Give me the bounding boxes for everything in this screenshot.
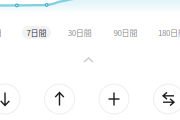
button[interactable]: 30日間 bbox=[58, 26, 102, 39]
button[interactable]: Send bbox=[44, 84, 74, 114]
button[interactable]: Swap bbox=[153, 84, 180, 114]
button[interactable]: 90日間 bbox=[103, 26, 147, 39]
button[interactable]: 180日間 bbox=[150, 26, 180, 39]
button[interactable]: 1日 bbox=[0, 26, 18, 39]
button[interactable]: Buy bbox=[99, 84, 129, 114]
staticText: 90日間 bbox=[113, 27, 137, 38]
staticText: 30日間 bbox=[68, 27, 92, 38]
staticText: 180日間 bbox=[158, 27, 180, 38]
button[interactable]: Receive bbox=[0, 84, 20, 114]
staticText: 1日 bbox=[0, 27, 2, 38]
staticText: 7日間 bbox=[26, 27, 46, 38]
button[interactable]: 7日間 bbox=[14, 26, 58, 39]
button[interactable]: Expand bbox=[78, 52, 99, 68]
